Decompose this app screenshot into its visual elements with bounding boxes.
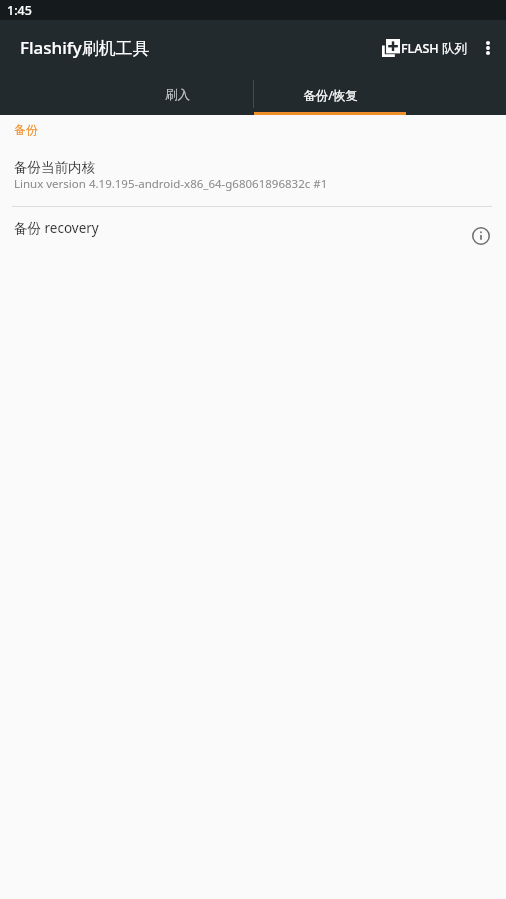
button[interactable]: 备份/恢复: [254, 75, 406, 115]
button[interactable]: 备份 recovery: [0, 207, 506, 257]
button[interactable]: FLASH 队列: [378, 31, 471, 65]
staticText: Flashify刷机工具: [20, 36, 150, 59]
staticText: 刷入: [165, 87, 190, 103]
staticText: 备份 recovery: [14, 219, 466, 237]
staticText: Linux version 4.19.195-android-x86_64-g6…: [14, 176, 328, 192]
staticText: 备份: [14, 122, 38, 137]
button[interactable]: 备份当前内核: [0, 137, 506, 206]
button[interactable]: Info: [468, 223, 494, 249]
staticText: FLASH 队列: [401, 40, 467, 57]
staticText: 1:45: [7, 2, 32, 19]
button[interactable]: More options: [471, 31, 505, 65]
button[interactable]: 刷入: [101, 75, 253, 115]
staticText: 备份当前内核: [14, 159, 95, 176]
staticText: 备份/恢复: [303, 87, 358, 104]
